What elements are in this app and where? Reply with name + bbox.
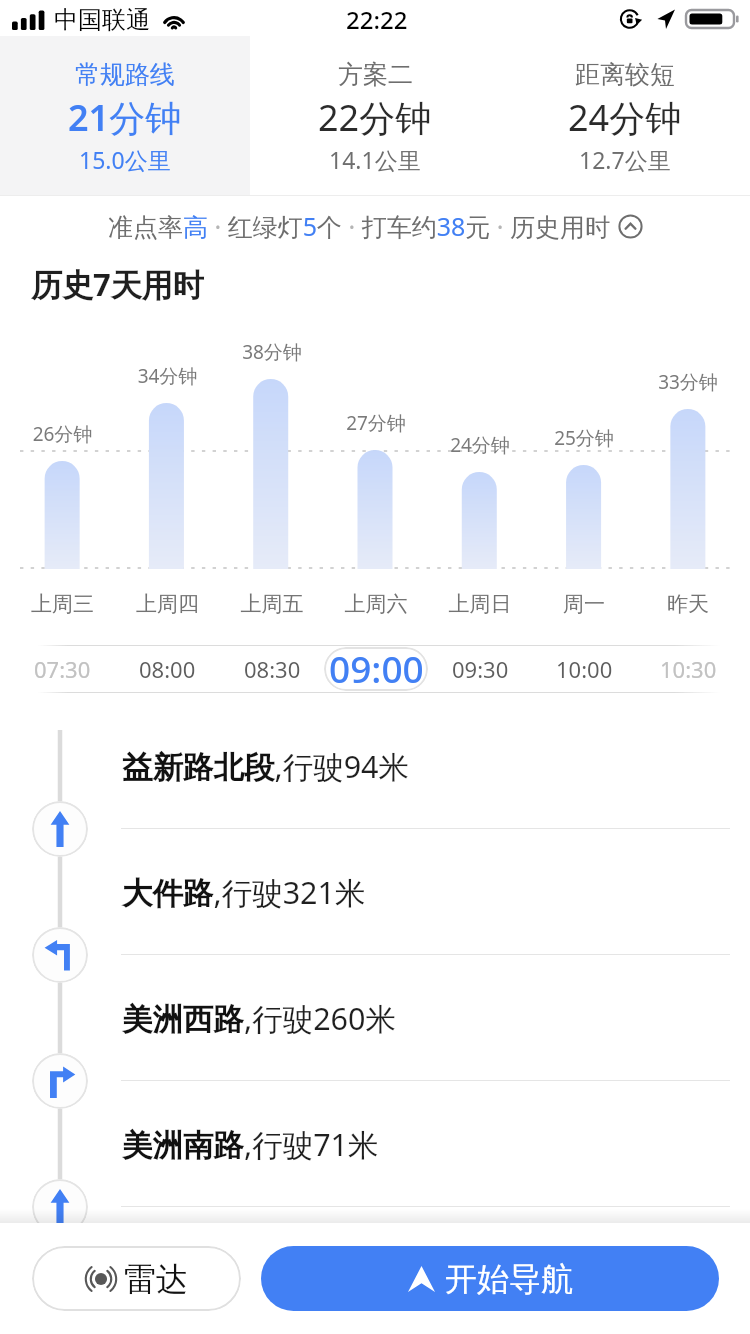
staticText: 上周三	[10, 591, 115, 617]
button[interactable]: 美洲西路,行驶260米	[0, 955, 750, 1081]
button[interactable]: 直行	[32, 1179, 88, 1235]
staticText: 34分钟	[115, 363, 220, 389]
staticText: 周一	[532, 591, 636, 617]
staticText: 美洲西路,行驶260米	[122, 997, 397, 1039]
staticText: 09:00	[329, 647, 424, 687]
staticText: 中国联通	[54, 5, 150, 35]
button[interactable]: 直行	[32, 801, 88, 857]
staticText: 准点率高 · 红绿灯5个 · 打车约38元 · 历史用时	[108, 209, 611, 243]
button[interactable]: 大件路,行驶321米	[0, 829, 750, 955]
button[interactable]: 10:00	[532, 646, 636, 692]
button[interactable]: 收起历史用时	[0, 196, 750, 243]
button[interactable]: 常规路线	[0, 36, 250, 195]
staticText: 上周五	[220, 591, 324, 617]
staticText: 大件路,行驶321米	[122, 871, 366, 913]
staticText: 22分钟	[318, 93, 432, 142]
staticText: 09:30	[452, 654, 509, 684]
button[interactable]: 距离较短	[500, 36, 750, 195]
staticText: 08:00	[139, 654, 196, 684]
button[interactable]: 10:30	[636, 646, 740, 692]
staticText: 24分钟	[428, 432, 532, 458]
staticText: 昨天	[636, 591, 740, 617]
button[interactable]: 08:30	[220, 646, 324, 692]
button[interactable]: 右转	[32, 1053, 88, 1109]
button[interactable]: 09:00	[324, 646, 428, 692]
staticText: 07:30	[34, 654, 91, 684]
staticText: 方案二	[338, 59, 413, 90]
staticText: 08:30	[244, 654, 301, 684]
button[interactable]: 美洲南路,行驶71米	[0, 1081, 750, 1207]
staticText: 上周六	[324, 591, 428, 617]
staticText: 距离较短	[575, 59, 675, 90]
staticText: 27分钟	[324, 410, 428, 436]
button[interactable]: 09:30	[428, 646, 532, 692]
staticText: 雷达	[124, 1259, 188, 1299]
staticText: 25分钟	[532, 425, 636, 451]
button[interactable]: 08:00	[115, 646, 220, 692]
button[interactable]: 左转	[32, 927, 88, 983]
staticText: 开始导航	[445, 1259, 573, 1299]
staticText: 常规路线	[75, 59, 175, 90]
button[interactable]: 07:30	[10, 646, 115, 692]
staticText: 14.1公里	[329, 144, 421, 175]
staticText: 美洲南路,行驶71米	[122, 1123, 379, 1165]
button[interactable]: 益新路北段,行驶94米	[0, 703, 750, 829]
button[interactable]: 开始导航	[261, 1246, 719, 1311]
staticText: 上周日	[428, 591, 532, 617]
button[interactable]: 雷达	[32, 1246, 241, 1311]
staticText: 历史7天用时	[31, 263, 204, 305]
staticText: 22:22	[346, 3, 408, 36]
staticText: 15.0公里	[79, 144, 171, 175]
staticText: 38分钟	[220, 339, 324, 365]
staticText: 26分钟	[10, 421, 115, 447]
button[interactable]: 方案二	[250, 36, 500, 195]
staticText: 24分钟	[568, 93, 682, 142]
staticText: 10:30	[660, 654, 717, 684]
staticText: 10:00	[556, 654, 613, 684]
staticText: 益新路北段,行驶94米	[122, 745, 410, 787]
staticText: 上周四	[115, 591, 220, 617]
staticText: 12.7公里	[579, 144, 671, 175]
staticText: 21分钟	[68, 93, 182, 142]
staticText: 33分钟	[636, 369, 740, 395]
